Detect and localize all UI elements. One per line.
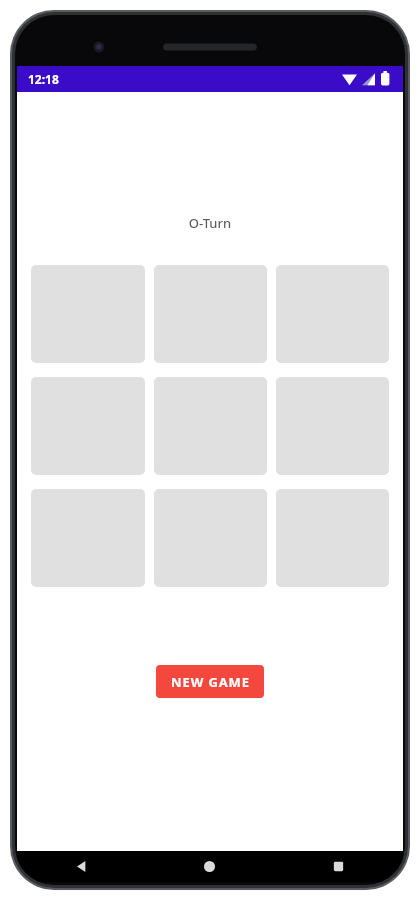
button[interactable]: Home xyxy=(145,851,274,882)
staticText: 12:18 xyxy=(28,71,59,87)
button[interactable]: NEW GAME xyxy=(156,665,264,698)
staticText: O-Turn xyxy=(17,214,403,232)
button[interactable]: Recent apps xyxy=(274,851,403,882)
staticText: NEW GAME xyxy=(171,673,250,691)
button[interactable]: Back xyxy=(17,851,145,882)
